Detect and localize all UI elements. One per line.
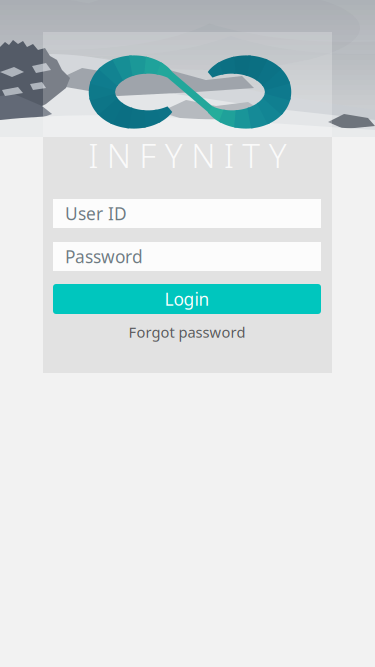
staticText: User ID	[65, 202, 127, 225]
staticText: Password	[65, 245, 143, 268]
button[interactable]: Forgot password	[53, 322, 321, 342]
button[interactable]: Login	[53, 284, 321, 314]
staticText: INFYNITY	[88, 133, 287, 177]
staticText: Login	[164, 287, 209, 310]
staticText: Forgot password	[128, 322, 245, 342]
